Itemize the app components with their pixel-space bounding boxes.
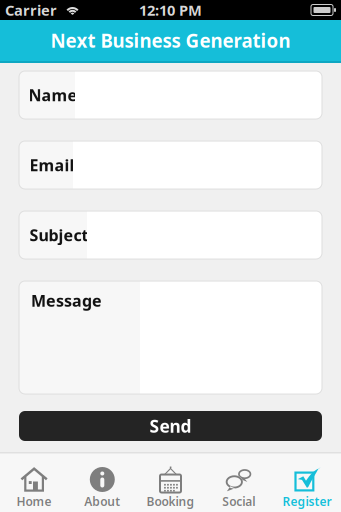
button[interactable]: Register [273, 453, 341, 512]
staticText: Subject [29, 224, 88, 246]
button[interactable]: About [68, 453, 136, 512]
staticText: Carrier [5, 0, 57, 20]
button[interactable]: Booking [136, 453, 205, 512]
staticText: Name [28, 84, 77, 106]
staticText: Booking [146, 493, 194, 509]
staticText: Social [222, 493, 255, 509]
staticText: Next Business Generation [50, 28, 290, 53]
staticText: About [84, 493, 120, 509]
button[interactable]: Social [205, 453, 273, 512]
staticText: Email [29, 154, 74, 176]
staticText: Send [149, 414, 191, 437]
staticText: Home [17, 493, 52, 509]
button[interactable]: Home [0, 453, 68, 512]
staticText: Message [31, 290, 102, 311]
button[interactable]: Send [19, 411, 322, 441]
staticText: Register [282, 493, 331, 509]
staticText: 12:10 PM [139, 0, 202, 20]
